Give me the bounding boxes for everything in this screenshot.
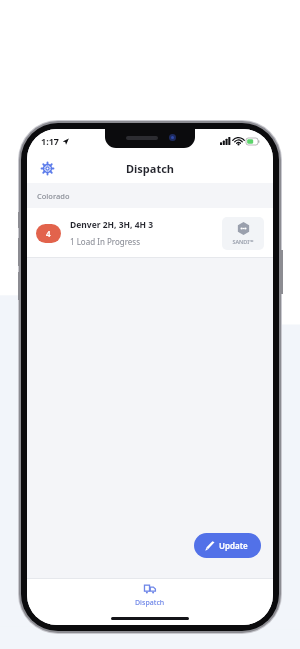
button[interactable]: Update xyxy=(194,533,261,558)
staticText: Denver 2H, 3H, 4H 3 xyxy=(70,219,154,231)
staticText: Dispatch xyxy=(135,598,165,608)
button[interactable]: Dispatch xyxy=(27,579,273,611)
staticText: 1:17 xyxy=(41,135,59,147)
staticText: Colorado xyxy=(37,191,70,201)
button[interactable]: Settings xyxy=(35,156,59,180)
staticText: Update xyxy=(219,540,248,551)
button[interactable]: 4 xyxy=(27,208,273,258)
staticText: SANDI™ xyxy=(232,238,254,245)
staticText: 4 xyxy=(46,228,51,239)
staticText: Dispatch xyxy=(126,161,175,176)
staticText: 1 Load In Progress xyxy=(70,236,140,247)
